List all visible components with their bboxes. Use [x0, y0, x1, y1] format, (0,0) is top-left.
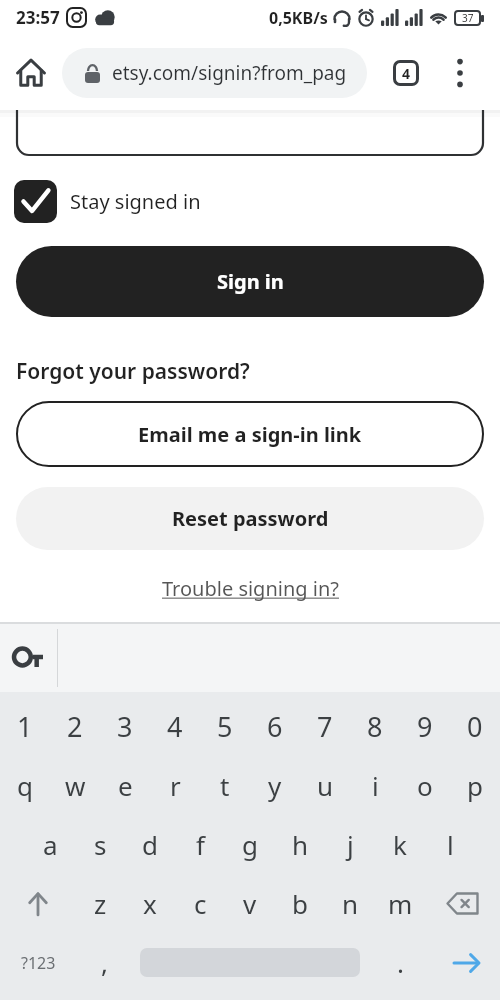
- staticText: t: [220, 768, 230, 803]
- staticText: 2: [67, 708, 83, 745]
- button[interactable]: 7: [300, 696, 350, 756]
- button[interactable]: k: [375, 815, 425, 874]
- staticText: g: [242, 827, 258, 862]
- button[interactable]: r: [150, 756, 200, 815]
- staticText: j: [347, 827, 354, 862]
- staticText: 3: [117, 708, 133, 745]
- staticText: f: [196, 827, 205, 862]
- button[interactable]: g: [225, 815, 275, 874]
- button[interactable]: j: [325, 815, 375, 874]
- staticText: h: [292, 827, 309, 862]
- button[interactable]: [0, 874, 75, 933]
- staticText: .: [397, 945, 404, 980]
- staticText: 37: [462, 11, 474, 25]
- button[interactable]: Email me a sign-in link: [16, 401, 484, 467]
- button[interactable]: u: [300, 756, 350, 815]
- staticText: p: [467, 768, 483, 803]
- button[interactable]: 2: [50, 696, 100, 756]
- button[interactable]: ?123: [0, 933, 76, 992]
- staticText: Sign in: [217, 268, 284, 295]
- staticText: e: [118, 768, 133, 803]
- button[interactable]: Trouble signing in?: [162, 575, 339, 602]
- button[interactable]: h: [275, 815, 325, 874]
- button[interactable]: Stay signed in: [14, 180, 201, 223]
- button[interactable]: 6: [250, 696, 300, 756]
- button[interactable]: [0, 624, 57, 692]
- button[interactable]: z: [75, 874, 125, 933]
- button[interactable]: [450, 43, 470, 103]
- button[interactable]: 4: [150, 696, 200, 756]
- staticText: m: [388, 886, 413, 921]
- staticText: i: [372, 768, 379, 803]
- button[interactable]: y: [250, 756, 300, 815]
- staticText: 4: [167, 708, 183, 745]
- staticText: b: [292, 886, 308, 921]
- button[interactable]: Reset password: [16, 487, 484, 550]
- staticText: x: [143, 886, 157, 921]
- staticText: 9: [417, 708, 433, 745]
- button[interactable]: [425, 874, 500, 933]
- staticText: l: [447, 827, 454, 862]
- button[interactable]: 8: [350, 696, 400, 756]
- staticText: 1: [17, 708, 33, 745]
- staticText: 7: [317, 708, 333, 745]
- button[interactable]: 5: [200, 696, 250, 756]
- button[interactable]: 4: [393, 60, 419, 86]
- staticText: q: [17, 768, 33, 803]
- button[interactable]: .: [367, 933, 433, 992]
- button[interactable]: 0: [450, 696, 500, 756]
- staticText: n: [342, 886, 359, 921]
- staticText: 23:57: [16, 6, 60, 29]
- button[interactable]: [433, 933, 500, 992]
- staticText: 4: [402, 64, 411, 83]
- button[interactable]: [133, 933, 367, 992]
- staticText: z: [94, 886, 107, 921]
- button[interactable]: f: [175, 815, 225, 874]
- button[interactable]: i: [350, 756, 400, 815]
- staticText: Reset password: [172, 505, 329, 532]
- staticText: k: [393, 827, 407, 862]
- button[interactable]: n: [325, 874, 375, 933]
- staticText: r: [170, 768, 181, 803]
- button[interactable]: etsy.com/signin?from_pag: [62, 48, 367, 98]
- button[interactable]: l: [425, 815, 475, 874]
- button[interactable]: w: [50, 756, 100, 815]
- button[interactable]: 1: [0, 696, 50, 756]
- staticText: ,: [101, 945, 108, 980]
- staticText: Stay signed in: [70, 188, 201, 215]
- staticText: Forgot your password?: [16, 357, 250, 386]
- button[interactable]: c: [175, 874, 225, 933]
- button[interactable]: q: [0, 756, 50, 815]
- button[interactable]: e: [100, 756, 150, 815]
- staticText: a: [43, 827, 58, 862]
- button[interactable]: v: [225, 874, 275, 933]
- button[interactable]: o: [400, 756, 450, 815]
- button[interactable]: ,: [76, 933, 133, 992]
- button[interactable]: Sign in: [16, 246, 484, 317]
- staticText: y: [268, 768, 282, 803]
- staticText: 0: [467, 708, 483, 745]
- button[interactable]: 3: [100, 696, 150, 756]
- button[interactable]: d: [125, 815, 175, 874]
- staticText: w: [65, 768, 86, 803]
- staticText: etsy.com/signin?from_pag: [112, 60, 347, 86]
- button[interactable]: 9: [400, 696, 450, 756]
- staticText: o: [417, 768, 433, 803]
- staticText: ?123: [21, 952, 56, 974]
- button[interactable]: x: [125, 874, 175, 933]
- button[interactable]: p: [450, 756, 500, 815]
- staticText: c: [194, 886, 207, 921]
- staticText: 0,5KB/s: [269, 7, 328, 29]
- staticText: 5: [217, 708, 233, 745]
- button[interactable]: b: [275, 874, 325, 933]
- button[interactable]: a: [25, 815, 75, 874]
- staticText: v: [243, 886, 257, 921]
- staticText: Email me a sign-in link: [138, 421, 362, 448]
- button[interactable]: m: [375, 874, 425, 933]
- button[interactable]: t: [200, 756, 250, 815]
- button[interactable]: s: [75, 815, 125, 874]
- staticText: d: [142, 827, 158, 862]
- staticText: 8: [367, 708, 383, 745]
- button[interactable]: [0, 43, 62, 103]
- staticText: u: [317, 768, 334, 803]
